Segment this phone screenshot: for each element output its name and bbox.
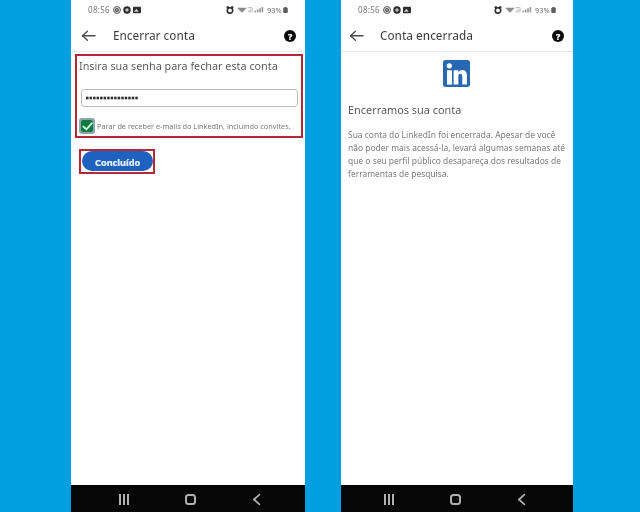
button[interactable] bbox=[81, 89, 298, 107]
staticText: Concluído bbox=[95, 156, 141, 169]
staticText: Conta encerrada bbox=[380, 27, 473, 43]
staticText: Parar de receber e-mails do LinkedIn, in… bbox=[97, 121, 291, 131]
button[interactable]: Parar de receber e-mails do LinkedIn, in… bbox=[79, 118, 291, 134]
button[interactable]: Concluído bbox=[82, 151, 153, 171]
staticText: 08:56 bbox=[358, 4, 380, 15]
button[interactable]: Help bbox=[549, 27, 567, 45]
staticText: Insira sua senha para fechar esta conta bbox=[79, 58, 278, 73]
button[interactable]: Back bbox=[344, 23, 368, 47]
staticText: 08:56 bbox=[88, 4, 110, 15]
staticText: 93% bbox=[535, 5, 550, 15]
button[interactable]: Home bbox=[443, 487, 467, 511]
staticText: 93% bbox=[267, 5, 282, 15]
staticText: ? bbox=[288, 30, 293, 42]
staticText: Encerrar conta bbox=[113, 27, 195, 43]
button[interactable]: Help bbox=[281, 27, 299, 45]
button[interactable]: Recent apps bbox=[377, 487, 401, 511]
button[interactable]: Recent apps bbox=[112, 487, 136, 511]
button[interactable]: Home bbox=[178, 487, 202, 511]
staticText: Encerramos sua conta bbox=[348, 102, 462, 117]
button[interactable]: Back bbox=[244, 487, 268, 511]
staticText: ? bbox=[556, 30, 561, 42]
staticText: Sua conta do LinkedIn foi encerrada. Ape… bbox=[348, 129, 573, 180]
button[interactable]: Back bbox=[76, 23, 100, 47]
button[interactable]: Back bbox=[509, 487, 533, 511]
